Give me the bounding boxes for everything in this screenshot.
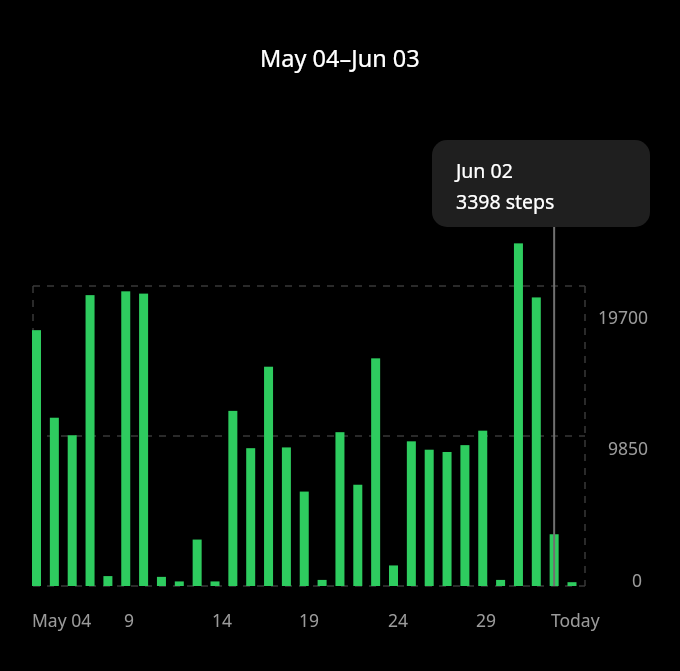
button[interactable]: Daily step count chart, May 04 to Jun 03 (0, 0, 680, 671)
